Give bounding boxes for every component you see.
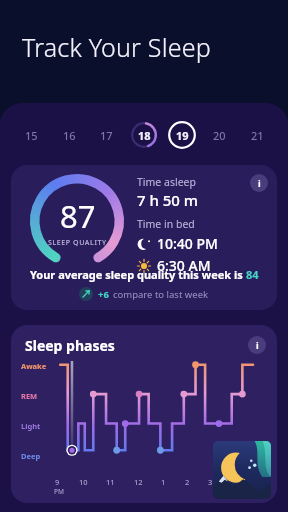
staticText: 18 (138, 128, 151, 143)
staticText: Deep (21, 451, 55, 461)
staticText: Time in bed (137, 217, 195, 231)
button[interactable]: 15 (16, 120, 46, 150)
staticText: 87 (60, 195, 96, 237)
button[interactable]: Info (11, 165, 277, 310)
staticText: 16 (63, 128, 76, 143)
button[interactable]: Info (250, 174, 268, 192)
staticText: 7 h 50 m (137, 190, 199, 210)
staticText: Time asleep (137, 175, 196, 189)
staticText: 17 (100, 128, 113, 143)
staticText: 84 (246, 267, 259, 282)
staticText: compare to last week (113, 288, 209, 301)
staticText: Sleep phases (25, 336, 115, 355)
button[interactable]: Sleep phases (11, 325, 277, 503)
button[interactable]: 20 (204, 120, 234, 150)
staticText: 9 (55, 477, 60, 487)
staticText: 12 (134, 477, 143, 487)
staticText: 1 (161, 477, 166, 487)
staticText: Light (21, 421, 55, 431)
staticText: +6 (98, 288, 109, 301)
staticText: 6:30 AM (157, 256, 211, 275)
staticText: Awake (21, 361, 55, 371)
staticText: 15 (25, 128, 38, 143)
staticText: REM (21, 391, 55, 401)
staticText: Track Your Sleep (22, 30, 211, 64)
staticText: 2 (185, 477, 190, 487)
button[interactable]: Info (248, 336, 266, 354)
button[interactable]: 18 (129, 120, 159, 150)
staticText: 4 (232, 477, 237, 487)
staticText: Your average sleep quality this week is (30, 267, 246, 282)
staticText: 11 (106, 477, 115, 487)
staticText: PM (54, 487, 64, 496)
button[interactable]: 19 (167, 120, 197, 150)
button[interactable]: 17 (91, 120, 121, 150)
staticText: SLEEP QUALITY (48, 238, 107, 248)
button[interactable]: 21 (242, 120, 272, 150)
button[interactable]: Sleep story (213, 441, 271, 499)
staticText: 21 (251, 128, 264, 143)
staticText: i (258, 177, 261, 189)
staticText: i (256, 339, 259, 351)
button[interactable]: 16 (54, 120, 84, 150)
staticText: 20 (213, 128, 226, 143)
staticText: 10:40 PM (157, 234, 218, 253)
staticText: 3 (208, 477, 213, 487)
staticText: 10 (79, 477, 88, 487)
staticText: 19 (176, 128, 189, 143)
